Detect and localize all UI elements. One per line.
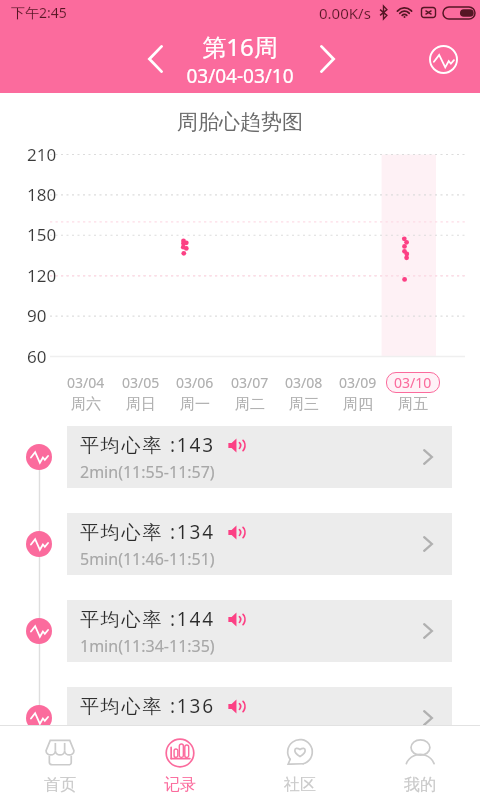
staticText: 03/05 xyxy=(122,373,160,392)
staticText: 平均心率 :134 xyxy=(80,519,215,545)
button[interactable]: 平均心率 :134 xyxy=(67,513,452,575)
staticText: 210 xyxy=(27,143,57,166)
button[interactable]: 首页 xyxy=(0,726,120,800)
staticText: 平均心率 :143 xyxy=(80,432,215,458)
staticText: 150 xyxy=(27,223,57,246)
button[interactable]: 平均心率 :136 xyxy=(67,687,452,749)
staticText: 社区 xyxy=(284,775,316,795)
staticText: 03/08 xyxy=(285,373,323,392)
button[interactable]: Heart rate monitor xyxy=(423,39,463,79)
button[interactable]: 03/06 xyxy=(166,372,224,414)
staticText: 03/06 xyxy=(176,373,214,392)
staticText: 180 xyxy=(27,183,57,206)
button[interactable]: 平均心率 :143 xyxy=(67,426,452,488)
staticText: 周三 xyxy=(289,395,319,414)
staticText: 03/04-03/10 xyxy=(186,63,294,89)
button[interactable]: 03/07 xyxy=(221,372,279,414)
staticText: 我的 xyxy=(404,775,436,795)
button[interactable]: 社区 xyxy=(240,726,360,800)
staticText: 首页 xyxy=(44,775,76,795)
staticText: 周日 xyxy=(126,395,156,414)
staticText: 平均心率 :136 xyxy=(80,693,215,719)
staticText: 3min(11:20-11:23) xyxy=(80,722,215,744)
staticText: 下午2:45 xyxy=(11,3,67,22)
staticText: 1min(11:34-11:35) xyxy=(80,635,215,657)
staticText: 记录 xyxy=(164,775,196,795)
button[interactable]: 03/09 xyxy=(329,372,387,414)
button[interactable]: 我的 xyxy=(360,726,480,800)
staticText: 周四 xyxy=(343,395,373,414)
staticText: 周一 xyxy=(180,395,210,414)
staticText: 周五 xyxy=(398,395,428,414)
button[interactable]: 03/10 xyxy=(384,372,442,414)
staticText: 第16周 xyxy=(202,30,278,63)
staticText: 5min(11:46-11:51) xyxy=(80,548,215,570)
staticText: 2min(11:55-11:57) xyxy=(80,461,215,483)
staticText: 周六 xyxy=(71,395,101,414)
button[interactable]: 记录 xyxy=(120,726,240,800)
button[interactable]: 03/04 xyxy=(57,372,115,414)
staticText: 120 xyxy=(27,264,57,287)
staticText: 周二 xyxy=(235,395,265,414)
staticText: 90 xyxy=(27,304,47,327)
button[interactable]: Next week xyxy=(306,25,348,93)
staticText: 03/07 xyxy=(231,373,269,392)
staticText: 0.00K/s xyxy=(319,3,371,23)
staticText: 周胎心趋势图 xyxy=(177,109,303,135)
staticText: 03/09 xyxy=(339,373,377,392)
button[interactable]: 03/08 xyxy=(275,372,333,414)
staticText: 60 xyxy=(27,345,47,368)
button[interactable]: 平均心率 :144 xyxy=(67,600,452,662)
button[interactable]: 03/05 xyxy=(112,372,170,414)
staticText: 03/10 xyxy=(394,373,432,392)
staticText: 平均心率 :144 xyxy=(80,606,215,632)
staticText: 03/04 xyxy=(67,373,105,392)
button[interactable]: Previous week xyxy=(134,25,176,93)
